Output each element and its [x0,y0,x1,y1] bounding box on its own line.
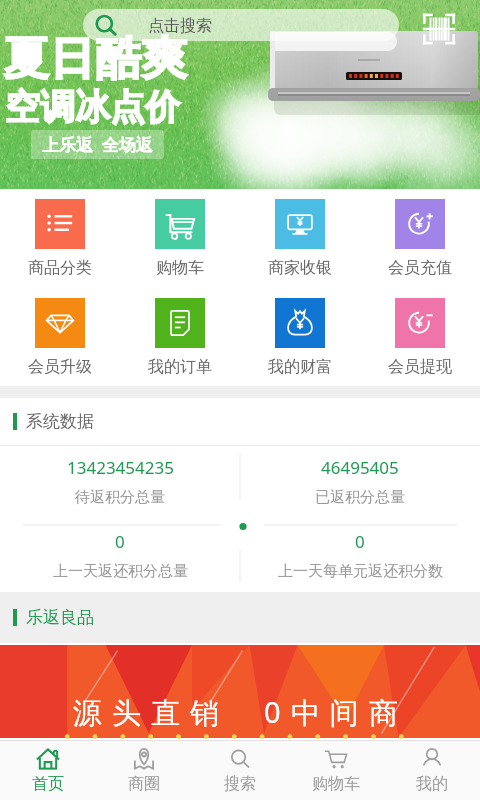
button[interactable]: 会员升级 [0,298,120,377]
staticText: 商家收银 [268,258,332,278]
staticText: 上一天返还积分总量 [53,562,188,581]
button[interactable]: 搜索 [192,741,288,800]
button[interactable]: 商圈 [96,741,192,800]
staticText: 我的 [416,774,448,794]
button[interactable]: 我的订单 [120,298,240,377]
staticText: 我的财富 [268,357,332,377]
button[interactable]: 扫一扫 [422,13,456,45]
staticText: 46495405 [321,456,399,479]
staticText: 上乐返 全场返 [42,133,153,156]
staticText: 13423454235 [67,456,174,479]
staticText: 上一天每单元返还积分数 [278,562,443,581]
staticText: 待返积分总量 [75,488,165,507]
staticText: 乐返良品 [26,607,94,628]
staticText: 夏日酷爽 [3,31,187,88]
staticText: 0 [355,530,365,553]
button[interactable]: 46495405 [240,445,480,518]
staticText: 源头直销 0中间商 [73,692,408,732]
button[interactable]: 13423454235 [0,445,240,518]
staticText: 首页 [32,774,64,794]
button[interactable]: 我的 [384,741,480,800]
button[interactable]: 会员充值 [360,199,480,278]
button[interactable]: 源头直销 0中间商 [0,645,480,738]
button[interactable]: 0 [240,518,480,592]
button[interactable]: 会员提现 [360,298,480,377]
staticText: 商圈 [128,774,160,794]
staticText: 搜索 [224,774,256,794]
button[interactable]: 购物车 [288,741,384,800]
staticText: 点击搜索 [148,16,212,36]
button[interactable]: 商品分类 [0,199,120,278]
button[interactable]: 我的财富 [240,298,360,377]
staticText: 我的订单 [148,357,212,377]
button[interactable]: 点击搜索 [83,9,399,41]
staticText: 空调冰点价 [5,85,180,129]
staticText: 会员充值 [388,258,452,278]
staticText: 已返积分总量 [315,488,405,507]
staticText: 0 [115,530,125,553]
staticText: 商品分类 [28,258,92,278]
button[interactable]: 购物车 [120,199,240,278]
staticText: 系统数据 [26,411,94,432]
button[interactable]: 首页 [0,741,96,800]
staticText: 购物车 [312,774,360,794]
staticText: 购物车 [156,258,204,278]
button[interactable]: 商家收银 [240,199,360,278]
staticText: 会员提现 [388,357,452,377]
staticText: 会员升级 [28,357,92,377]
button[interactable]: 0 [0,518,240,592]
